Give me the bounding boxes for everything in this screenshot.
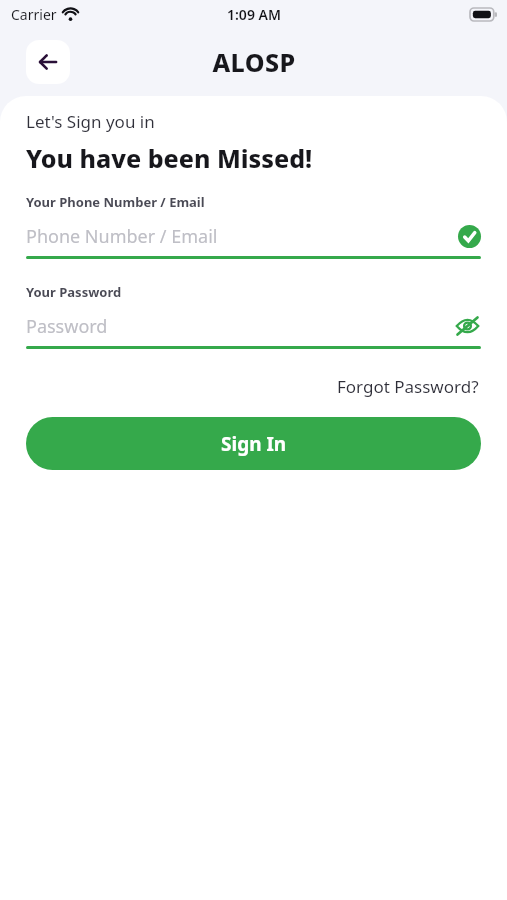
button[interactable]: Sign In [26, 417, 481, 470]
staticText: Sign In [221, 431, 287, 457]
staticText: You have been Missed! [26, 141, 313, 175]
button[interactable]: Password [26, 311, 481, 341]
staticText: Let's Sign you in [26, 110, 155, 133]
staticText: Forgot Password? [337, 375, 479, 398]
staticText: Your Phone Number / Email [26, 193, 205, 211]
staticText: ALOSP [212, 45, 296, 79]
button[interactable]: Back [26, 40, 70, 84]
button[interactable]: Forgot Password? [335, 373, 481, 400]
button[interactable]: Phone Number / Email [26, 221, 481, 251]
button[interactable]: Show password [453, 312, 481, 340]
staticText: Password [26, 314, 453, 339]
staticText: Your Password [26, 283, 122, 301]
staticText: Phone Number / Email [26, 224, 458, 249]
staticText: 1:09 AM [227, 5, 281, 24]
staticText: Carrier [11, 5, 57, 24]
